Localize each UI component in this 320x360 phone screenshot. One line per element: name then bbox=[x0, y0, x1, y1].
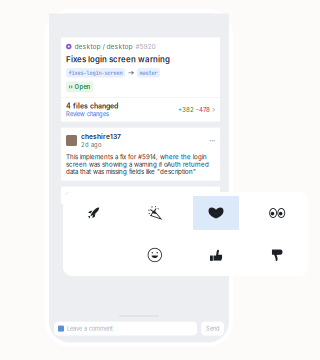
staticText: desktop / desktop bbox=[74, 42, 132, 51]
staticText: #5920 bbox=[135, 42, 155, 51]
staticText: ••• bbox=[209, 138, 215, 143]
staticText: This implements a fix for #5914, where t… bbox=[66, 153, 209, 176]
button[interactable]: 4 files changed bbox=[61, 98, 220, 122]
staticText: 2d ago bbox=[81, 141, 102, 148]
staticText: Fixes login screen warning bbox=[66, 55, 170, 64]
button[interactable]: Thumbs down reaction bbox=[247, 234, 308, 276]
staticText: cheshire137 bbox=[81, 133, 121, 141]
staticText: master bbox=[139, 69, 157, 76]
staticText: +382 bbox=[178, 106, 194, 113]
staticText: Open bbox=[74, 83, 90, 90]
button[interactable]: Eyes reaction bbox=[247, 192, 308, 234]
staticText: Send bbox=[206, 325, 219, 332]
button[interactable]: Smile reaction bbox=[124, 234, 185, 276]
staticText: -478 bbox=[194, 106, 210, 113]
staticText: cheshire137 requested a review from bria… bbox=[76, 192, 211, 199]
staticText: 4 files changed bbox=[66, 102, 118, 110]
button[interactable]: Celebrate reaction bbox=[124, 192, 185, 234]
staticText: Review changes bbox=[66, 111, 109, 118]
staticText: Leave a comment bbox=[67, 325, 113, 332]
button[interactable]: Heart reaction bbox=[185, 192, 247, 234]
staticText: fixes-login-screen bbox=[68, 69, 122, 76]
button[interactable]: Rocket reaction bbox=[63, 192, 124, 234]
button[interactable]: Thumbs up reaction bbox=[185, 234, 247, 276]
